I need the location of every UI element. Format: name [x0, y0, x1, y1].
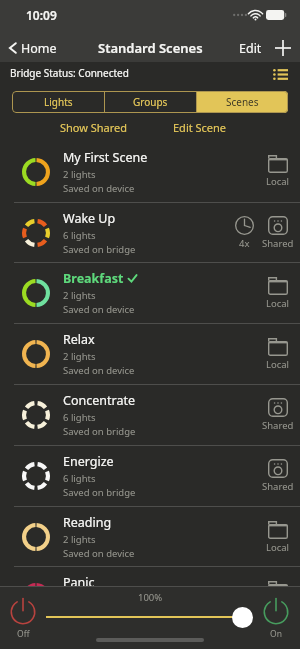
staticText: Saved on device	[63, 182, 135, 195]
button[interactable]: Wake Up	[0, 203, 300, 263]
staticText: Wake Up	[63, 210, 116, 227]
staticText: Relax	[63, 331, 95, 348]
staticText: Saved on bridge	[63, 425, 136, 438]
staticText: Edit Scene	[173, 120, 227, 135]
staticText: 2 lights	[63, 533, 96, 546]
staticText: 2 lights	[63, 350, 96, 363]
staticText: Groups	[133, 95, 168, 109]
staticText: Shared	[262, 480, 294, 493]
staticText: My First Scene	[63, 149, 148, 166]
staticText: Local	[266, 297, 290, 310]
staticText: 100%	[138, 591, 163, 604]
staticText: 2 lights	[63, 289, 96, 302]
button[interactable]: Edit	[236, 37, 265, 60]
button[interactable]: Relax	[0, 324, 300, 384]
staticText: Bridge Status: Connected	[10, 66, 129, 80]
button[interactable]: Lights	[12, 91, 104, 113]
staticText: Home	[21, 40, 57, 57]
staticText: Off	[17, 628, 30, 640]
staticText: Saved on device	[63, 547, 135, 560]
button[interactable]: Brightness	[46, 606, 254, 628]
button[interactable]: Breakfast	[0, 263, 300, 323]
staticText: Local	[266, 175, 290, 188]
button[interactable]: Reading	[0, 507, 300, 567]
staticText: Scenes	[226, 95, 259, 109]
button[interactable]: Show Shared	[55, 116, 133, 139]
staticText: Lights	[44, 95, 73, 109]
button[interactable]: Concentrate	[0, 385, 300, 445]
button[interactable]: Energize	[0, 446, 300, 506]
staticText: Saved on device	[63, 364, 135, 377]
button[interactable]: Scenes	[197, 91, 288, 113]
staticText: Shared	[262, 237, 294, 250]
button[interactable]: Groups	[105, 91, 196, 113]
button[interactable]: Home	[6, 36, 57, 60]
button[interactable]: All lights off	[10, 598, 36, 640]
staticText: 10:09	[26, 7, 57, 23]
button[interactable]: My First Scene	[0, 141, 300, 202]
button[interactable]: Scene list options	[269, 63, 291, 85]
staticText: Saved on bridge	[63, 486, 136, 499]
staticText: 6 lights	[63, 411, 96, 424]
staticText: Edit	[239, 40, 262, 57]
staticText: Local	[266, 358, 290, 371]
staticText: Standard Scenes	[98, 39, 203, 57]
staticText: Energize	[63, 453, 114, 470]
button[interactable]: Panic	[0, 567, 300, 627]
staticText: Saved on bridge	[63, 243, 136, 256]
button[interactable]: Add scene	[273, 38, 293, 58]
staticText: Reading	[63, 514, 112, 531]
staticText: Shared	[262, 419, 294, 432]
staticText: Breakfast	[63, 270, 124, 287]
staticText: Local	[266, 541, 290, 554]
staticText: Local	[266, 601, 290, 614]
staticText: Show Shared	[60, 120, 128, 135]
staticText: On	[270, 628, 282, 640]
staticText: Saved on device	[63, 303, 135, 316]
staticText: Panic	[63, 574, 95, 591]
staticText: 6 lights	[63, 472, 96, 485]
staticText: Concentrate	[63, 392, 135, 409]
staticText: 4x	[239, 237, 250, 250]
button[interactable]: Edit Scene	[168, 116, 232, 139]
staticText: Saved on device	[63, 607, 135, 620]
staticText: 2 lights	[63, 168, 96, 181]
staticText: 6 lights	[63, 229, 96, 242]
button[interactable]: All lights on	[263, 598, 289, 640]
